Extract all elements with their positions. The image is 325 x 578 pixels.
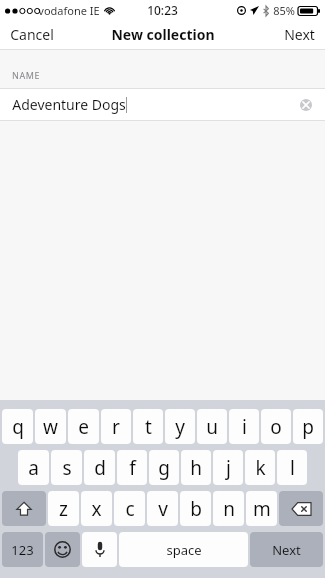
button[interactable]: Emoji — [45, 532, 80, 567]
button[interactable]: s — [51, 450, 82, 485]
button[interactable]: h — [181, 450, 211, 485]
staticText: j — [226, 455, 231, 481]
button[interactable]: v — [147, 491, 178, 526]
button[interactable]: q — [2, 409, 33, 444]
button[interactable]: c — [114, 491, 145, 526]
staticText: New collection — [111, 25, 215, 44]
staticText: h — [190, 455, 202, 481]
button[interactable]: a — [18, 450, 49, 485]
button[interactable]: g — [149, 450, 179, 485]
button[interactable]: Dictation — [82, 532, 117, 567]
staticText: u — [206, 414, 218, 440]
button[interactable]: j — [213, 450, 243, 485]
button[interactable]: Next — [284, 20, 315, 49]
staticText: vodafone IE — [38, 3, 100, 18]
staticText: Next — [272, 541, 301, 559]
staticText: space — [166, 541, 202, 559]
staticText: 123 — [11, 541, 34, 559]
button[interactable]: z — [48, 491, 79, 526]
button[interactable]: e — [68, 409, 99, 444]
button[interactable]: k — [245, 450, 275, 485]
staticText: x — [91, 496, 102, 522]
staticText: b — [190, 496, 202, 522]
button[interactable]: Cancel — [10, 20, 54, 49]
button[interactable]: t — [133, 409, 163, 444]
staticText: f — [129, 455, 136, 481]
staticText: v — [158, 496, 168, 522]
staticText: l — [290, 455, 295, 481]
button[interactable]: Shift — [2, 491, 46, 526]
button[interactable]: space — [119, 532, 248, 567]
staticText: Adeventure Dogs — [12, 95, 126, 114]
staticText: d — [94, 455, 106, 481]
staticText: y — [175, 414, 185, 440]
staticText: Next — [284, 25, 315, 44]
staticText: e — [78, 414, 89, 440]
button[interactable]: o — [261, 409, 291, 444]
staticText: 10:23 — [147, 2, 178, 18]
button[interactable]: p — [293, 409, 323, 444]
staticText: o — [270, 414, 282, 440]
button[interactable]: Next — [250, 532, 323, 567]
button[interactable]: Backspace — [279, 491, 323, 526]
button[interactable]: m — [246, 491, 277, 526]
staticText: w — [43, 414, 58, 440]
staticText: r — [112, 414, 120, 440]
button[interactable]: b — [180, 491, 211, 526]
button[interactable]: Clear text — [297, 96, 315, 114]
staticText: s — [62, 455, 72, 481]
button[interactable]: l — [277, 450, 307, 485]
button[interactable]: n — [213, 491, 244, 526]
staticText: t — [145, 414, 152, 440]
button[interactable]: d — [84, 450, 115, 485]
button[interactable]: Adeventure Dogs — [0, 89, 325, 120]
button[interactable]: 123 — [2, 532, 43, 567]
button[interactable]: f — [117, 450, 147, 485]
button[interactable]: r — [101, 409, 131, 444]
staticText: g — [158, 455, 170, 481]
staticText: i — [242, 414, 247, 440]
staticText: Cancel — [10, 25, 54, 44]
button[interactable]: i — [229, 409, 259, 444]
staticText: c — [125, 496, 135, 522]
staticText: 85% — [273, 3, 295, 18]
staticText: m — [253, 496, 271, 522]
staticText: k — [255, 455, 266, 481]
staticText: q — [12, 414, 24, 440]
button[interactable]: u — [197, 409, 227, 444]
button[interactable]: x — [81, 491, 112, 526]
staticText: NAME — [12, 69, 41, 81]
staticText: n — [223, 496, 235, 522]
staticText: p — [302, 414, 314, 440]
staticText: a — [28, 455, 39, 481]
button[interactable]: w — [35, 409, 66, 444]
staticText: z — [59, 496, 68, 522]
button[interactable]: y — [165, 409, 195, 444]
